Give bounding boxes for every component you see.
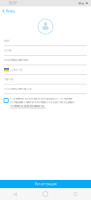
staticText: Назад — [6, 9, 15, 13]
staticText: ◁ — [13, 192, 17, 196]
button[interactable]: Имя — [4, 36, 87, 46]
staticText: Регистрация — [34, 182, 56, 186]
staticText: Почта — [4, 49, 11, 52]
staticText: ▮▮ — [79, 2, 81, 5]
staticText: Подтверждение пароля — [4, 87, 31, 90]
staticText: Имя — [4, 39, 9, 42]
staticText: Соглашения с сайтом и согласен с обработ… — [10, 101, 74, 104]
staticText: ▢ — [74, 192, 78, 196]
button[interactable]: Пароль — [4, 75, 87, 84]
staticText: ‹ — [2, 7, 5, 15]
button[interactable]: ‹ — [0, 6, 18, 16]
staticText: Я принимаю все условия пользовательского… — [10, 97, 72, 100]
staticText: 13:37 — [9, 1, 17, 5]
button[interactable]: Подтверждение email — [4, 56, 87, 65]
button[interactable]: Политика конфиденциальности — [10, 104, 46, 108]
staticText: Подтверждение email — [4, 59, 29, 62]
staticText: ▲ — [82, 2, 85, 5]
staticText: +380 — [10, 68, 18, 71]
button[interactable]: Recents — [61, 188, 91, 200]
staticText: Пароль — [4, 78, 13, 81]
button[interactable]: Принимаю условия — [4, 97, 8, 102]
button[interactable]: Home — [30, 188, 61, 200]
staticText: ▾ — [19, 68, 20, 71]
button[interactable]: Почта — [4, 46, 87, 56]
button[interactable]: +380 — [4, 65, 87, 75]
staticText: Политика конфиденциальности — [10, 104, 44, 107]
button[interactable]: Back — [0, 188, 30, 200]
button[interactable]: Регистрация — [0, 180, 91, 188]
staticText: ◯ — [42, 192, 48, 196]
button[interactable]: Подтверждение пароля — [4, 84, 87, 94]
